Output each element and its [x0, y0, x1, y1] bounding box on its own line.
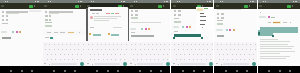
button[interactable]: Enter — [166, 62, 170, 66]
button[interactable]: Recents — [158, 66, 164, 73]
button[interactable]: Tag — [1, 31, 7, 33]
button[interactable]: Back — [51, 66, 57, 73]
button[interactable]: Recents — [115, 66, 121, 73]
button[interactable]: Tag — [130, 28, 136, 30]
button[interactable]: Encrypt — [158, 5, 162, 8]
button[interactable]: Home — [191, 66, 197, 73]
button[interactable]: Recents — [244, 66, 250, 73]
button[interactable]: Back — [137, 66, 143, 73]
button[interactable]: Copy — [89, 32, 103, 36]
button[interactable]: Encrypt — [287, 5, 291, 8]
button[interactable]: Home — [148, 66, 154, 73]
button[interactable]: Recents — [201, 66, 207, 73]
button[interactable]: Home — [19, 66, 25, 73]
button[interactable]: Encrypt — [118, 5, 122, 8]
button[interactable]: Encrypt — [29, 5, 33, 8]
button[interactable]: Back — [180, 66, 186, 73]
button[interactable]: Encrypt — [244, 5, 248, 8]
button[interactable]: Tag — [259, 16, 266, 18]
button[interactable]: Recents — [29, 66, 35, 73]
button[interactable]: Home — [234, 66, 240, 73]
button[interactable]: Enter — [209, 62, 213, 66]
button[interactable]: Enter — [123, 62, 127, 66]
button[interactable]: Recents — [287, 66, 293, 73]
button[interactable]: Encrypt — [75, 5, 79, 8]
button[interactable]: Home — [277, 66, 283, 73]
button[interactable]: Encrypt — [197, 5, 201, 8]
button[interactable]: Share — [108, 32, 122, 36]
button[interactable]: Tag — [216, 29, 223, 31]
button[interactable]: Recents — [72, 66, 78, 73]
button[interactable]: Enter — [252, 62, 256, 66]
button[interactable]: Back — [223, 66, 229, 73]
button[interactable]: Back — [8, 66, 14, 73]
button[interactable]: Enter — [80, 62, 84, 66]
button[interactable]: Back — [94, 66, 100, 73]
button[interactable]: Tag — [173, 26, 179, 28]
button[interactable]: Back — [266, 66, 272, 73]
button[interactable]: Home — [105, 66, 111, 73]
button[interactable]: Home — [62, 66, 68, 73]
